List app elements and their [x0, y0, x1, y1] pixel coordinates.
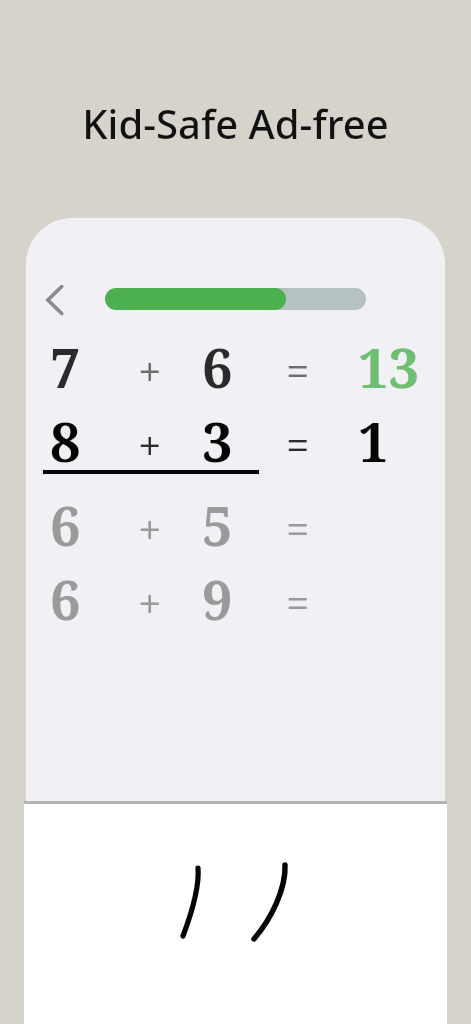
- staticText: 1: [358, 404, 389, 478]
- staticText: 8: [50, 404, 81, 478]
- staticText: =: [286, 416, 310, 473]
- staticText: =: [286, 574, 310, 631]
- staticText: 5: [202, 488, 233, 562]
- staticText: Kid-Safe Ad-free: [82, 96, 389, 150]
- button[interactable]: [105, 288, 366, 310]
- staticText: +: [138, 500, 162, 557]
- staticText: =: [286, 342, 310, 399]
- staticText: 6: [50, 562, 81, 636]
- button[interactable]: Back: [32, 276, 80, 324]
- staticText: 3: [202, 404, 233, 478]
- staticText: 7: [50, 330, 81, 404]
- staticText: +: [138, 416, 162, 473]
- staticText: +: [138, 574, 162, 631]
- staticText: =: [286, 500, 310, 557]
- staticText: +: [138, 342, 162, 399]
- staticText: 6: [50, 488, 81, 562]
- staticText: 13: [358, 330, 420, 404]
- staticText: 6: [202, 330, 233, 404]
- button[interactable]: Handwriting input area: [24, 804, 447, 1024]
- staticText: 9: [202, 562, 233, 636]
